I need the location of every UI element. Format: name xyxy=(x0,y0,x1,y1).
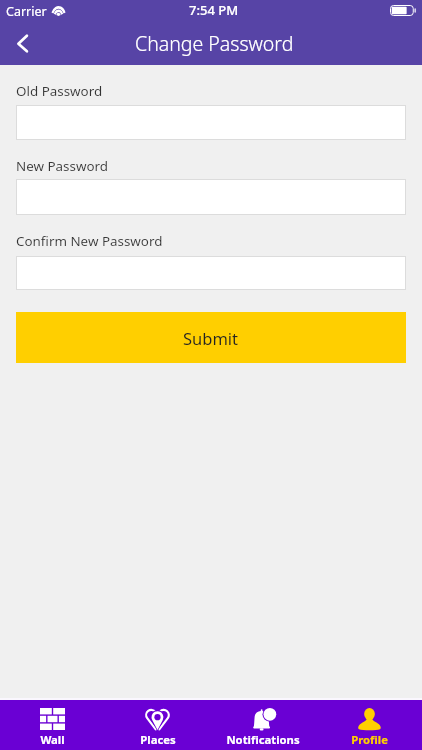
staticText: Places xyxy=(140,732,176,747)
staticText: Submit xyxy=(183,327,239,349)
button[interactable]: Notifications xyxy=(210,700,316,750)
staticText: Old Password xyxy=(16,82,103,100)
button[interactable]: Places xyxy=(105,700,210,750)
button[interactable] xyxy=(16,256,406,290)
staticText: Carrier xyxy=(6,3,47,20)
staticText: New Password xyxy=(16,157,109,175)
button[interactable] xyxy=(16,179,406,215)
staticText: 7:54 PM xyxy=(189,1,239,19)
button[interactable]: Back xyxy=(0,21,44,65)
staticText: Change Password xyxy=(135,30,294,57)
staticText: Wall xyxy=(40,732,65,747)
button[interactable]: Profile xyxy=(316,700,422,750)
staticText: Notifications xyxy=(226,732,300,747)
staticText: Confirm New Password xyxy=(16,232,163,250)
button[interactable] xyxy=(16,105,406,140)
staticText: Profile xyxy=(351,732,388,747)
button[interactable]: Submit xyxy=(16,312,406,363)
button[interactable]: Wall xyxy=(0,700,105,750)
